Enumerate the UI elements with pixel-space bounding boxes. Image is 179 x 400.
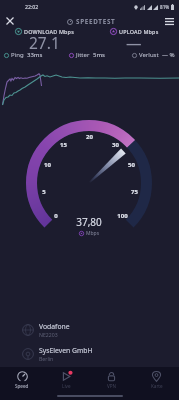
- staticText: UPLOAD Mbps: [119, 28, 159, 35]
- staticText: SysEleven GmbH: [39, 346, 93, 355]
- button[interactable]: Karte: [134, 367, 179, 389]
- staticText: 33ms: [27, 51, 43, 59]
- staticText: Vodafone: [39, 322, 70, 331]
- button[interactable]: Menu: [159, 12, 179, 30]
- staticText: Karte: [151, 383, 163, 389]
- staticText: NE2203: [39, 331, 58, 338]
- button[interactable]: Live: [44, 367, 89, 389]
- staticText: 20: [86, 133, 93, 141]
- button[interactable]: Speed: [0, 367, 44, 389]
- staticText: Verlust: [139, 51, 159, 59]
- button[interactable]: Close: [0, 12, 20, 30]
- staticText: 5ms: [93, 51, 106, 59]
- staticText: 30: [112, 141, 119, 149]
- staticText: 15: [60, 141, 67, 149]
- button[interactable]: Vodafone: [22, 322, 70, 338]
- staticText: Ping: [11, 51, 24, 59]
- staticText: 0: [54, 212, 58, 220]
- staticText: SPEEDTEST: [76, 17, 116, 26]
- staticText: 37,80: [76, 215, 102, 229]
- staticText: —: [126, 32, 142, 51]
- staticText: Jitter: [76, 51, 90, 59]
- staticText: VPN: [107, 383, 117, 389]
- staticText: DOWNLOAD Mbps: [24, 28, 74, 35]
- staticText: 10: [44, 161, 51, 169]
- staticText: Speed: [15, 383, 29, 389]
- staticText: 100: [117, 212, 128, 220]
- staticText: Mbps: [86, 230, 100, 237]
- staticText: — %: [162, 51, 175, 59]
- button[interactable]: SysEleven GmbH: [22, 346, 93, 362]
- staticText: 75: [131, 188, 138, 196]
- staticText: 22:02: [25, 3, 39, 10]
- staticText: Live: [62, 383, 71, 389]
- staticText: 50: [128, 161, 135, 169]
- staticText: 5: [42, 188, 46, 196]
- staticText: 27.1: [29, 32, 60, 51]
- button[interactable]: VPN: [89, 367, 134, 389]
- staticText: 81%: [160, 4, 170, 10]
- staticText: Berlin: [39, 355, 54, 362]
